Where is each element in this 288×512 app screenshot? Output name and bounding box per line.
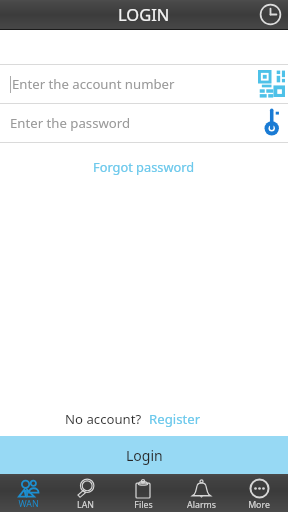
button[interactable]: Alarms (172, 474, 230, 512)
staticText: No account? (65, 410, 142, 428)
staticText: LAN (77, 499, 94, 511)
button[interactable]: Scan QR code (256, 70, 284, 98)
button[interactable]: Files (114, 474, 172, 512)
button[interactable]: Enter the password (0, 104, 288, 142)
button[interactable]: More (230, 474, 288, 512)
staticText: More (248, 499, 270, 511)
button[interactable]: Login (0, 436, 288, 474)
button[interactable]: Enter the account number (0, 65, 288, 103)
staticText: Register (149, 410, 201, 428)
button[interactable]: Register (149, 410, 201, 428)
button[interactable]: Forgot password (83, 155, 205, 178)
staticText: Alarms (187, 499, 216, 511)
staticText: Forgot password (93, 158, 195, 175)
staticText: Enter the password (10, 114, 131, 132)
staticText: LOGIN (118, 3, 170, 25)
staticText: WAN (18, 498, 39, 510)
staticText: Files (134, 499, 153, 511)
button[interactable]: Clock (259, 3, 282, 26)
button[interactable]: WAN (0, 474, 57, 512)
staticText: Login (126, 446, 163, 465)
staticText: Enter the account number (12, 75, 175, 93)
button[interactable]: Password (256, 109, 284, 137)
button[interactable]: LAN (57, 474, 114, 512)
